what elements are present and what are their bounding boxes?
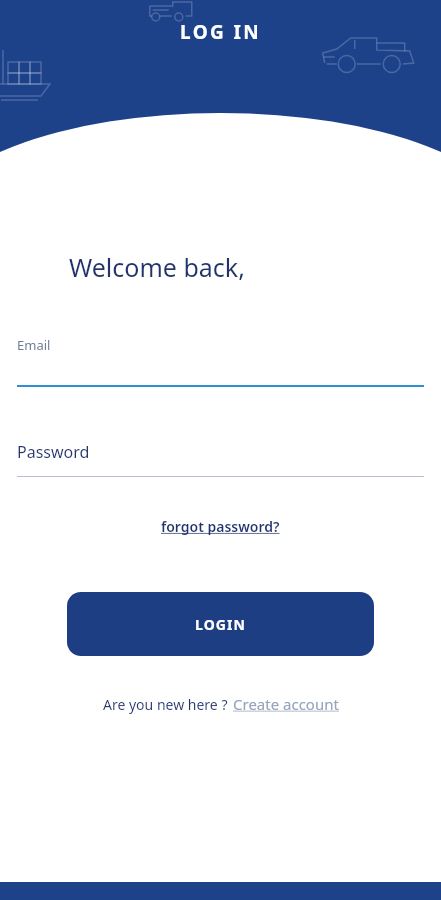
- staticText: Create account: [233, 694, 339, 714]
- button[interactable]: Create account: [233, 694, 339, 714]
- staticText: LOG IN: [180, 19, 262, 45]
- staticText: Are you new here ?: [103, 695, 228, 714]
- button[interactable]: Password: [17, 441, 424, 477]
- button[interactable]: Email: [17, 336, 424, 387]
- staticText: forgot password?: [161, 517, 280, 536]
- button[interactable]: forgot password?: [155, 514, 286, 539]
- staticText: LOGIN: [195, 615, 247, 634]
- staticText: Welcome back,: [69, 250, 245, 284]
- button[interactable]: LOGIN: [67, 592, 374, 656]
- staticText: Email: [17, 336, 51, 354]
- staticText: Password: [17, 441, 90, 463]
